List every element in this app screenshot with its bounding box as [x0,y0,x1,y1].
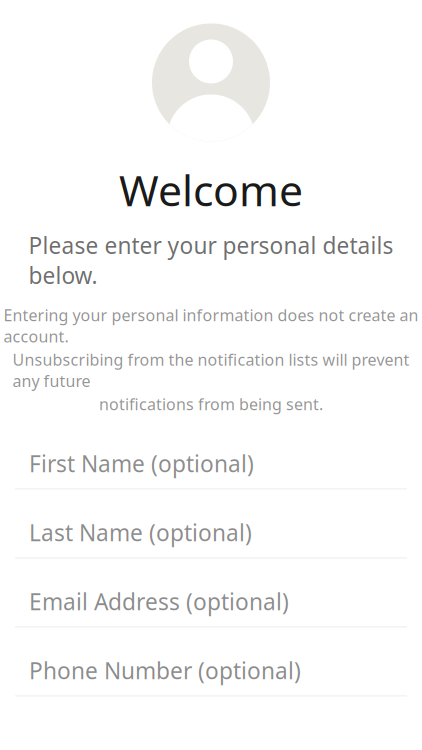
staticText: Phone Number (optional) [29,655,301,686]
staticText: notifications from being sent. [99,393,323,414]
staticText: Please enter your personal details below… [28,230,393,290]
button[interactable]: First Name (optional) [0,439,422,508]
button[interactable]: Last Name (optional) [0,508,422,577]
staticText: Unsubscribing from the notification list… [12,349,409,391]
staticText: Last Name (optional) [29,517,252,548]
button[interactable]: Phone Number (optional) [0,646,422,715]
staticText: First Name (optional) [29,448,254,479]
staticText: Email Address (optional) [29,586,289,617]
staticText: Entering your personal information does … [3,304,418,347]
staticText: Welcome [119,161,303,218]
button[interactable]: Email Address (optional) [0,577,422,646]
